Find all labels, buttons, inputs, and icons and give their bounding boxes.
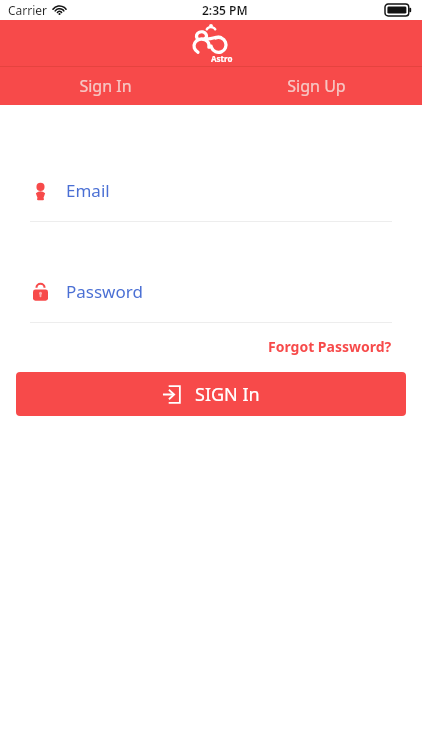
staticText: Forgot Password? [268,337,392,356]
button[interactable]: SIGN In [16,372,406,416]
staticText: SIGN In [195,382,260,407]
staticText: Carrier [8,2,48,18]
staticText: Password [66,280,143,303]
button[interactable]: Password [30,280,392,323]
staticText: Email [66,179,110,202]
other: User [33,183,48,200]
staticText: Sign In [79,75,132,97]
staticText: 2:35 PM [202,2,248,18]
button[interactable]: Sign Up [211,67,422,105]
button[interactable]: Sign In [0,67,211,105]
other: Password [33,283,48,301]
staticText: Astro [211,53,233,64]
staticText: Sign Up [287,75,346,97]
button[interactable]: User [30,179,392,222]
button[interactable]: Forgot Password? [264,333,396,360]
